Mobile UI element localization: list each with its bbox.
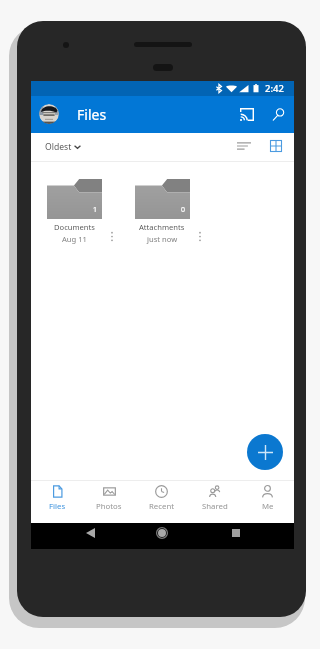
button[interactable]: Cast xyxy=(236,103,258,125)
button[interactable]: More options xyxy=(193,229,207,243)
button[interactable]: More options xyxy=(105,229,119,243)
button[interactable]: Recents xyxy=(220,523,251,549)
button[interactable]: Grid view xyxy=(267,137,285,155)
staticText: Oldest xyxy=(45,141,72,153)
button[interactable]: Me xyxy=(241,480,294,523)
button[interactable]: Files xyxy=(31,480,83,523)
button[interactable]: Add xyxy=(247,434,283,470)
staticText: Files xyxy=(77,105,107,124)
staticText: Attachments xyxy=(139,222,185,232)
button[interactable]: Back xyxy=(75,523,105,549)
staticText: Recent xyxy=(149,501,175,512)
button[interactable]: Recent xyxy=(135,480,188,523)
button[interactable]: Shared xyxy=(188,480,241,523)
button[interactable]: Sort xyxy=(235,137,253,155)
staticText: Photos xyxy=(96,501,122,512)
button[interactable]: Photos xyxy=(83,480,135,523)
staticText: Aug 11 xyxy=(62,234,87,244)
button[interactable]: Home xyxy=(146,523,177,549)
staticText: Documents xyxy=(54,222,95,232)
staticText: 1 xyxy=(93,205,98,215)
staticText: Shared xyxy=(202,501,228,512)
button[interactable]: Oldest xyxy=(45,141,81,153)
staticText: 2:42 xyxy=(265,82,284,95)
button[interactable]: 0 xyxy=(118,162,206,242)
button[interactable]: Account xyxy=(39,104,59,124)
staticText: just now xyxy=(147,234,178,244)
staticText: Me xyxy=(262,501,274,512)
staticText: Files xyxy=(49,501,66,512)
staticText: 0 xyxy=(181,205,186,215)
button[interactable]: Search xyxy=(267,103,289,125)
button[interactable]: 1 xyxy=(31,162,118,242)
